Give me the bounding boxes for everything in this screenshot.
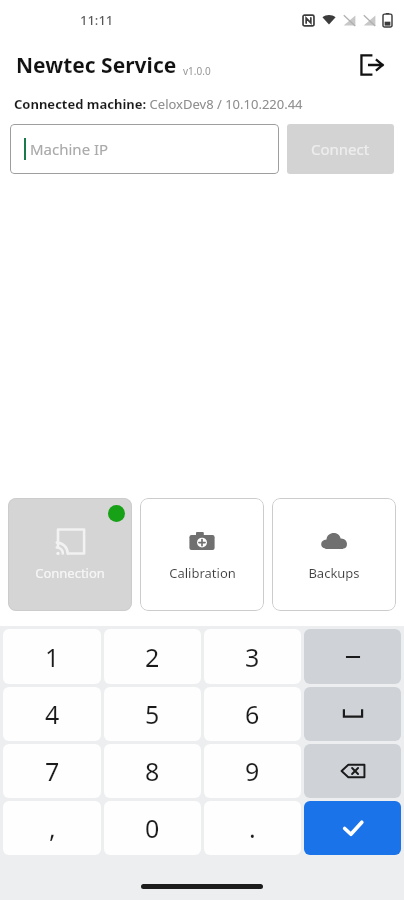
button[interactable]: 5 bbox=[104, 687, 201, 741]
button[interactable]: Machine IP bbox=[10, 124, 279, 174]
staticText: Newtec Service bbox=[16, 51, 177, 80]
staticText: 8 bbox=[145, 754, 160, 788]
button[interactable]: 0 bbox=[104, 801, 201, 855]
staticText: , bbox=[49, 811, 56, 845]
staticText: 1 bbox=[45, 640, 60, 674]
staticText: Backups bbox=[308, 564, 360, 582]
staticText: Calibration bbox=[169, 564, 236, 582]
button[interactable]: Calibration bbox=[140, 498, 264, 611]
button[interactable]: 6 bbox=[204, 687, 301, 741]
staticText: 6 bbox=[245, 697, 260, 731]
button[interactable]: 2 bbox=[104, 629, 201, 684]
button[interactable]: 3 bbox=[204, 629, 301, 684]
button[interactable]: 9 bbox=[204, 744, 301, 798]
staticText: 9 bbox=[245, 754, 260, 788]
button[interactable]: Space bbox=[304, 687, 401, 741]
staticText: Connection bbox=[35, 564, 105, 582]
button[interactable]: 1 bbox=[3, 629, 101, 684]
button[interactable]: Log out bbox=[352, 45, 392, 85]
staticText: Connect bbox=[311, 139, 370, 159]
staticText: v1.0.0 bbox=[183, 64, 211, 78]
staticText: . bbox=[249, 811, 256, 845]
staticText: 5 bbox=[145, 697, 160, 731]
staticText: 0 bbox=[145, 811, 160, 845]
button[interactable]: Connection bbox=[8, 498, 132, 611]
staticText: 4 bbox=[45, 697, 60, 731]
staticText: Connected machine: CeloxDev8 / 10.10.220… bbox=[14, 95, 303, 113]
button[interactable]: , bbox=[3, 801, 101, 855]
button[interactable]: Backups bbox=[272, 498, 396, 611]
button[interactable]: 7 bbox=[3, 744, 101, 798]
button[interactable]: Connect bbox=[287, 124, 394, 174]
button[interactable]: 8 bbox=[104, 744, 201, 798]
button[interactable]: Enter bbox=[304, 801, 401, 855]
button[interactable]: Backspace bbox=[304, 744, 401, 798]
staticText: 3 bbox=[245, 640, 260, 674]
staticText: 7 bbox=[45, 754, 60, 788]
button[interactable]: Dash bbox=[304, 629, 401, 684]
button[interactable]: 4 bbox=[3, 687, 101, 741]
staticText: 2 bbox=[145, 640, 160, 674]
staticText: Machine IP bbox=[30, 139, 109, 159]
staticText: 11:11 bbox=[80, 11, 114, 29]
button[interactable]: . bbox=[204, 801, 301, 855]
